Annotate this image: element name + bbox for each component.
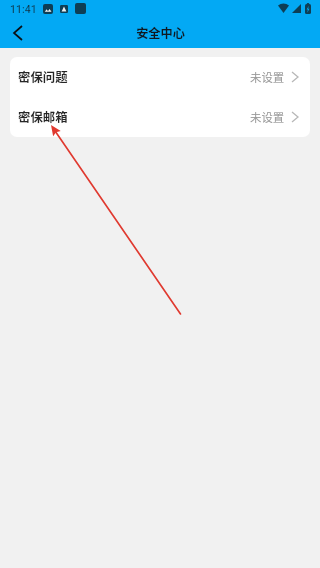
button[interactable]: 密保邮箱 [10,97,310,137]
staticText: 密保问题 [18,68,68,86]
staticText: 未设置 [250,69,285,86]
button[interactable]: 密保问题 [10,57,310,97]
staticText: 密保邮箱 [18,108,68,126]
staticText: 11:41 [10,3,37,15]
staticText: 未设置 [250,109,285,126]
button[interactable]: Back [0,17,35,48]
staticText: 安全中心 [136,24,185,42]
